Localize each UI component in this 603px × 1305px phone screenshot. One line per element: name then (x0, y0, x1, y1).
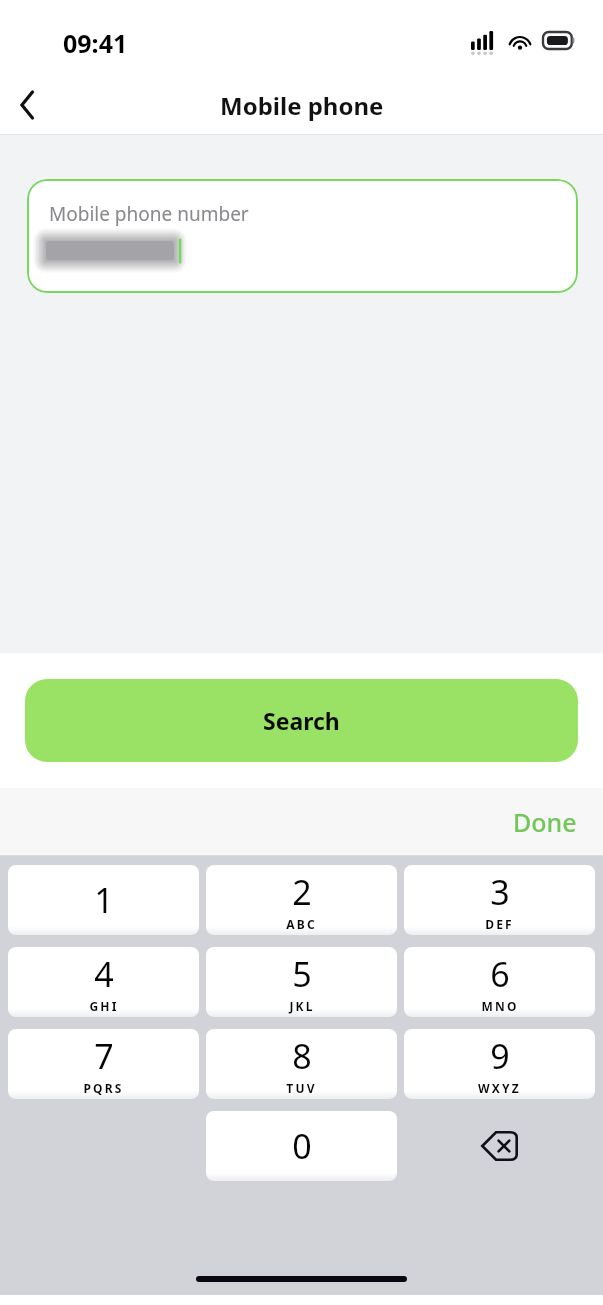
staticText: TUV (286, 1080, 317, 1096)
button[interactable]: Backspace (404, 1111, 595, 1181)
staticText: 3 (490, 869, 510, 915)
staticText: Mobile phone number (49, 201, 249, 227)
button[interactable]: 7 (8, 1029, 199, 1099)
button[interactable]: 6 (404, 947, 595, 1017)
staticText: GHI (89, 998, 119, 1014)
staticText: DEF (485, 916, 514, 932)
staticText: 2 (292, 869, 312, 915)
button[interactable]: Back (0, 77, 56, 133)
staticText: 5 (292, 951, 312, 997)
staticText: 7 (94, 1033, 114, 1079)
button[interactable]: 9 (404, 1029, 595, 1099)
staticText: 0 (292, 1123, 312, 1169)
staticText: ABC (286, 916, 317, 932)
staticText: 1 (94, 877, 114, 923)
staticText: Done (513, 805, 577, 839)
staticText: 09:41 (63, 26, 128, 60)
button[interactable]: 4 (8, 947, 199, 1017)
button[interactable]: 0 (206, 1111, 397, 1181)
staticText: MNO (481, 998, 519, 1014)
staticText: 8 (292, 1033, 312, 1079)
button[interactable]: 8 (206, 1029, 397, 1099)
staticText: 6 (490, 951, 510, 997)
staticText: 4 (94, 951, 114, 997)
button[interactable]: 1 (8, 865, 199, 935)
staticText: 9 (490, 1033, 510, 1079)
staticText: Search (263, 705, 340, 736)
button[interactable]: 5 (206, 947, 397, 1017)
button[interactable]: Search (25, 679, 578, 762)
staticText: PQRS (83, 1080, 124, 1096)
button[interactable]: Done (503, 797, 587, 847)
button[interactable]: 3 (404, 865, 595, 935)
staticText: Mobile phone (220, 89, 384, 122)
staticText: JKL (289, 998, 315, 1014)
staticText: WXYZ (478, 1080, 521, 1096)
button[interactable]: Mobile phone number (27, 179, 578, 293)
button[interactable]: 2 (206, 865, 397, 935)
